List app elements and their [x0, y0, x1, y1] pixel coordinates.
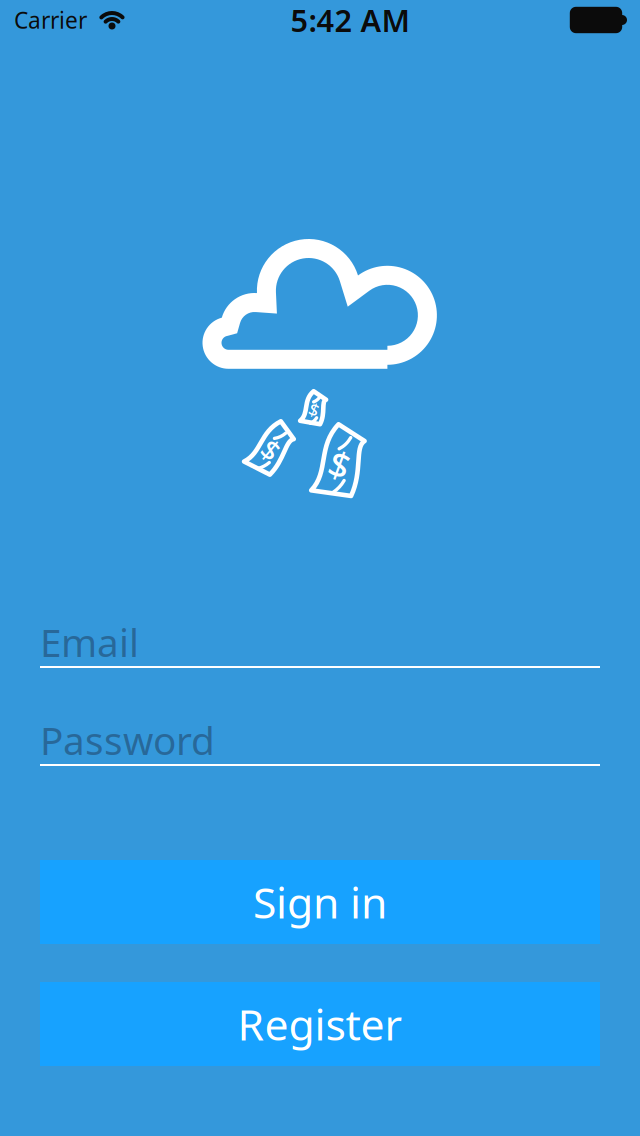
- staticText: $: [263, 432, 279, 469]
- button[interactable]: Register: [40, 982, 600, 1066]
- staticText: 5:42 AM: [290, 0, 409, 40]
- staticText: Email: [40, 616, 139, 668]
- staticText: Carrier: [14, 5, 87, 35]
- staticText: $: [330, 441, 351, 488]
- staticText: Register: [237, 996, 402, 1052]
- button[interactable]: Sign in: [40, 860, 600, 944]
- staticText: $: [309, 398, 319, 421]
- staticText: Sign in: [253, 874, 387, 930]
- staticText: Password: [40, 714, 215, 766]
